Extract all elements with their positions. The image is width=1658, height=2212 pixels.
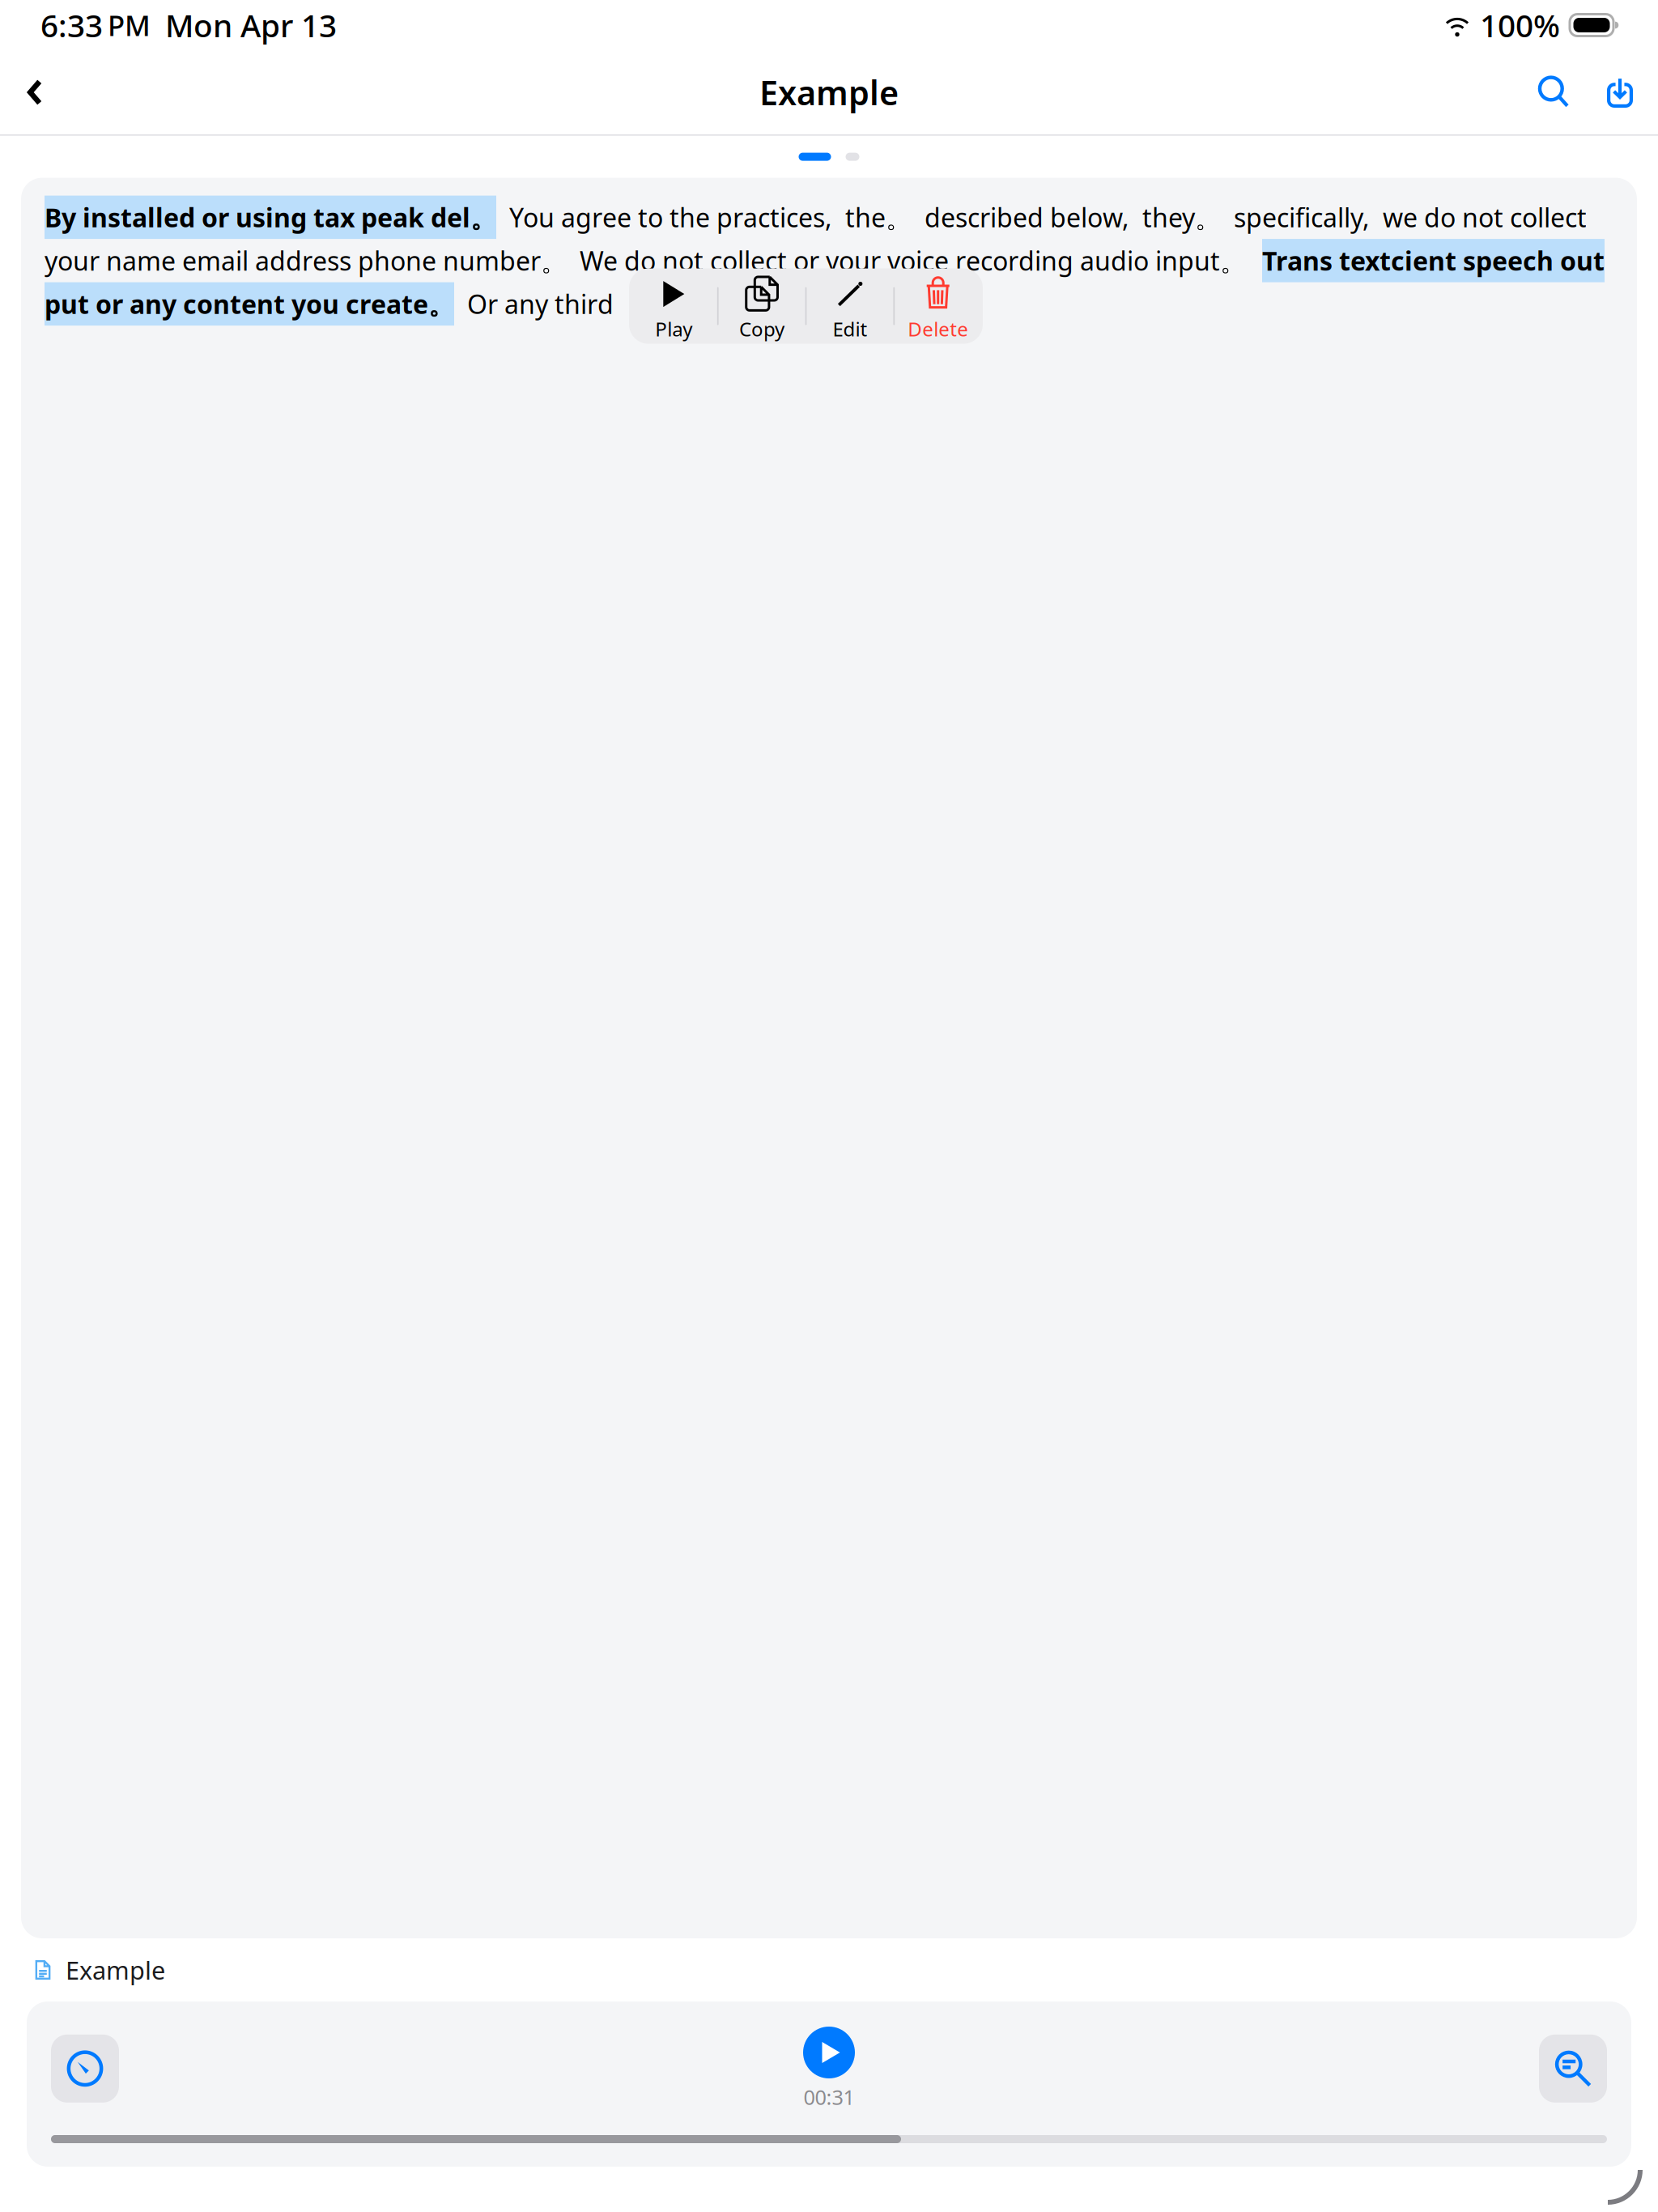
button[interactable]: Playback speed (51, 2035, 119, 2103)
button[interactable]: Play (803, 2027, 855, 2110)
staticText: put or any content you create。 (45, 287, 454, 321)
staticText: Mon Apr 13 (165, 4, 337, 46)
staticText: 00:31 (803, 2083, 855, 2110)
button[interactable]: Back (6, 60, 63, 125)
staticText: PM (108, 6, 151, 44)
button[interactable]: Search transcript (1539, 2035, 1607, 2103)
staticText: You agree to the practices, the。 describ… (496, 200, 1587, 235)
staticText: Edit (833, 316, 867, 342)
button[interactable]: Import (1588, 59, 1652, 125)
staticText: 6:33 (40, 4, 103, 46)
staticText: Copy (739, 316, 785, 342)
staticText: your name email address phone number。 We… (45, 243, 1262, 278)
staticText: By installed or using tax peak del。 (45, 200, 496, 235)
staticText: 100% (1480, 4, 1560, 46)
button[interactable]: Edit (807, 268, 893, 344)
button[interactable]: Search (1520, 59, 1588, 125)
staticText: Example (66, 1953, 165, 1986)
staticText: Example (759, 70, 899, 115)
staticText: Delete (908, 316, 968, 342)
button[interactable]: Play (630, 268, 717, 344)
staticText: Trans textcient speech out (1262, 243, 1605, 278)
button[interactable]: Example (0, 1938, 1658, 2001)
staticText: Play (655, 316, 692, 342)
button[interactable]: Delete (895, 268, 981, 344)
staticText: Or any third (454, 287, 614, 321)
button[interactable]: Copy (719, 268, 805, 344)
